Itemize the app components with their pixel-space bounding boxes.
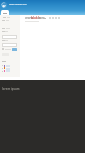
button[interactable]: Email input (2, 43, 17, 47)
button[interactable]: List item 3 (1, 70, 17, 73)
button[interactable]: List item 2 (1, 67, 17, 70)
staticText: lorem ipsum (2, 87, 20, 91)
staticText: www.blabla.com (9, 3, 27, 6)
button[interactable]: Name input (2, 35, 17, 39)
staticText: www. (25, 16, 34, 20)
button[interactable]: List item 1 (1, 65, 17, 68)
button[interactable]: Submit (12, 48, 17, 51)
button[interactable]: Browser tab (1, 10, 9, 16)
staticText: blabla (31, 16, 41, 20)
staticText: .com (37, 16, 45, 20)
